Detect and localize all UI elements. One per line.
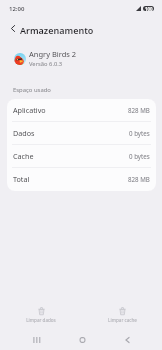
staticText: 0 bytes xyxy=(129,152,150,160)
staticText: 0 bytes xyxy=(129,129,150,137)
button[interactable]: Cache xyxy=(7,145,156,168)
staticText: Total xyxy=(13,174,30,184)
staticText: Aplicativo xyxy=(13,105,46,115)
staticText: Cache xyxy=(13,151,34,161)
staticText: 100 xyxy=(145,6,153,11)
button[interactable]: Dados xyxy=(7,122,156,145)
staticText: 12:00 xyxy=(9,5,25,13)
staticText: 828 MB xyxy=(128,175,150,183)
staticText: 828 MB xyxy=(128,106,150,114)
staticText: Armazenamento xyxy=(20,24,94,36)
button[interactable]: Total xyxy=(7,168,156,191)
staticText: Versão 6.0.3 xyxy=(29,60,63,68)
button[interactable]: Back xyxy=(4,20,21,37)
staticText: Limpar dados xyxy=(26,317,56,323)
button[interactable]: Home xyxy=(72,330,92,350)
button[interactable]: Recents xyxy=(26,330,46,350)
staticText: Espaço usado xyxy=(13,86,51,94)
button[interactable]: Back xyxy=(117,330,137,350)
staticText: Angry Birds 2 xyxy=(29,49,77,59)
staticText: Dados xyxy=(13,128,35,138)
staticText: Limpar cache xyxy=(108,317,137,323)
button[interactable]: Limpar dados xyxy=(15,305,67,325)
button[interactable]: Limpar cache xyxy=(96,305,148,325)
button[interactable]: Aplicativo xyxy=(7,99,156,122)
